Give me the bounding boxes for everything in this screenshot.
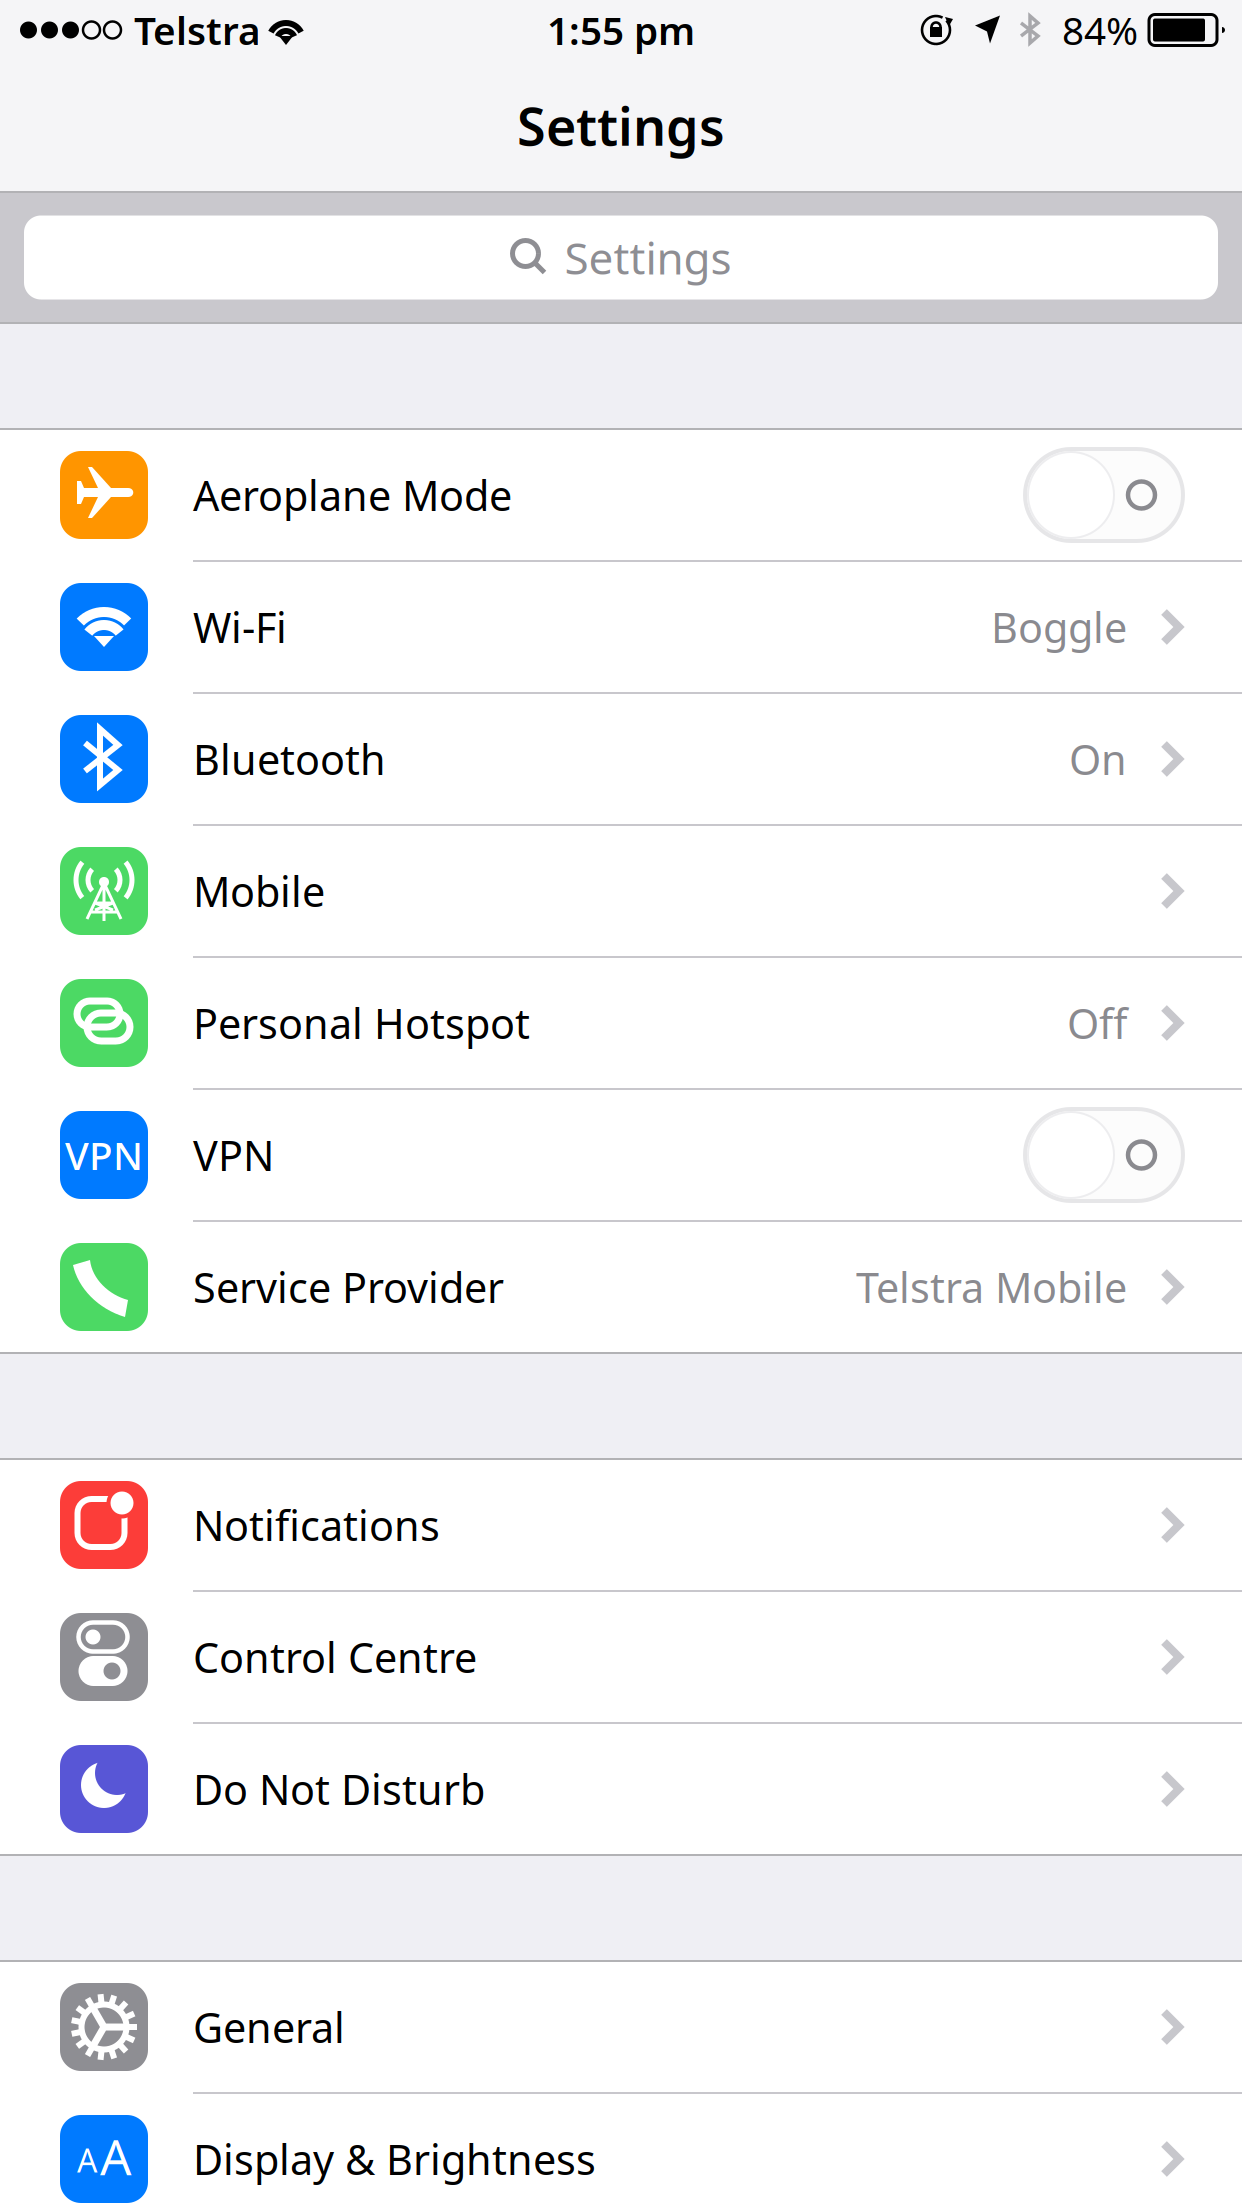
button[interactable]: Service Provider [0, 1222, 1242, 1352]
button[interactable]: VPN [0, 1090, 1242, 1220]
staticText: Aeroplane Mode [193, 468, 512, 522]
staticText: Notifications [193, 1498, 440, 1552]
staticText: A [100, 2123, 132, 2189]
button[interactable]: Do Not Disturb [0, 1724, 1242, 1854]
staticText: Mobile [193, 864, 325, 918]
staticText: VPN [193, 1128, 274, 1182]
button[interactable]: Notifications [0, 1460, 1242, 1590]
button[interactable]: Settings [0, 215, 1242, 299]
button[interactable]: Personal Hotspot [0, 958, 1242, 1088]
button[interactable]: Bluetooth [0, 694, 1242, 824]
staticText: A [77, 2139, 97, 2181]
staticText: Settings [564, 228, 731, 287]
staticText: Telstra Mobile [856, 1260, 1127, 1314]
button[interactable]: Wi-Fi [0, 562, 1242, 692]
button[interactable]: Control Centre [0, 1592, 1242, 1722]
staticText: Telstra [134, 4, 261, 56]
staticText: Boggle [991, 600, 1127, 654]
staticText: Control Centre [193, 1630, 477, 1684]
staticText: VPN [65, 1129, 143, 1181]
staticText: On [1069, 732, 1127, 786]
staticText: Personal Hotspot [193, 996, 530, 1050]
staticText: 1:55 pm [547, 4, 695, 56]
button[interactable]: A [0, 2094, 1242, 2208]
staticText: Off [1067, 996, 1127, 1050]
button[interactable]: General [0, 1962, 1242, 2092]
staticText: Service Provider [193, 1260, 504, 1314]
staticText: Bluetooth [193, 732, 386, 786]
staticText: Wi-Fi [193, 600, 287, 654]
staticText: General [193, 2000, 345, 2054]
button[interactable]: Aeroplane Mode [0, 430, 1242, 560]
button[interactable]: Mobile [0, 826, 1242, 956]
staticText: Do Not Disturb [193, 1762, 485, 1816]
staticText: Settings [517, 91, 725, 160]
staticText: Display & Brightness [193, 2132, 596, 2186]
staticText: 84% [1062, 4, 1138, 56]
